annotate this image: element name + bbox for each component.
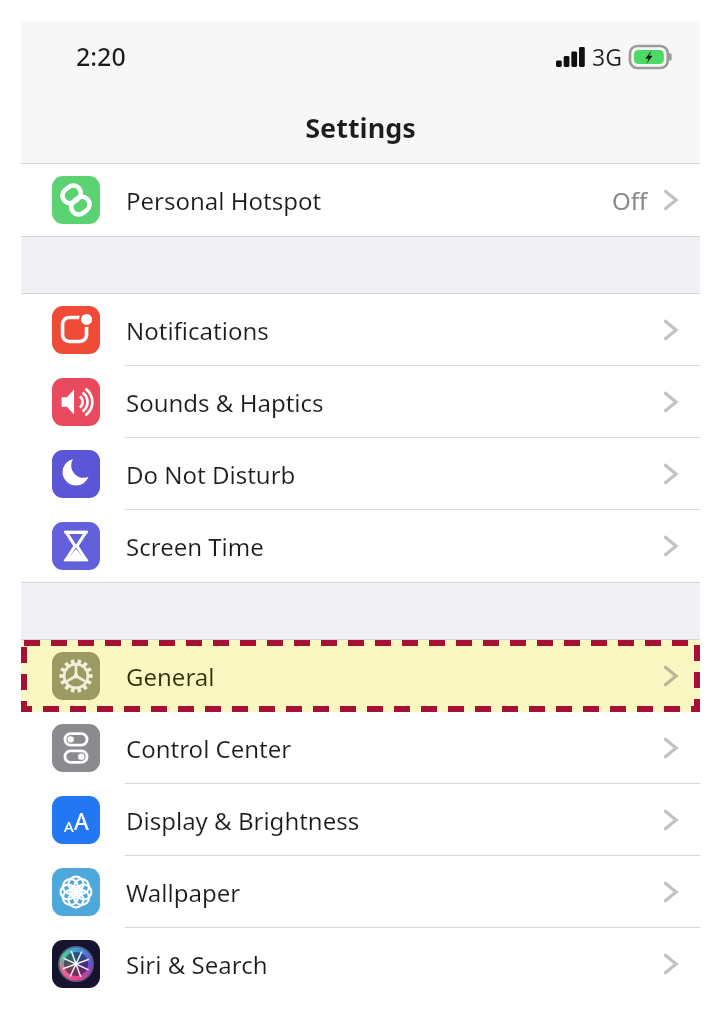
button[interactable]: Personal Hotspot [21,164,700,236]
button[interactable]: Do Not Disturb [21,438,700,510]
button[interactable]: Siri & Search [21,928,700,1000]
button[interactable]: A [21,784,700,856]
staticText: Siri & Search [126,948,662,981]
staticText: 3G [592,41,622,72]
button[interactable]: Notifications [21,294,700,366]
staticText: Notifications [126,314,662,347]
staticText: Personal Hotspot [126,184,612,217]
staticText: A [74,805,89,836]
staticText: Wallpaper [126,876,662,909]
button[interactable]: Sounds & Haptics [21,366,700,438]
staticText: 2:20 [76,39,126,73]
button[interactable]: Screen Time [21,510,700,582]
staticText: Control Center [126,732,662,765]
staticText: A [64,816,74,836]
staticText: Sounds & Haptics [126,386,662,419]
staticText: General [126,660,662,693]
button[interactable]: General [21,640,700,712]
staticText: Settings [305,109,416,146]
button[interactable]: Control Center [21,712,700,784]
staticText: Do Not Disturb [126,458,662,491]
staticText: Off [612,184,648,217]
staticText: Screen Time [126,530,662,563]
button[interactable]: Wallpaper [21,856,700,928]
staticText: Display & Brightness [126,804,662,837]
